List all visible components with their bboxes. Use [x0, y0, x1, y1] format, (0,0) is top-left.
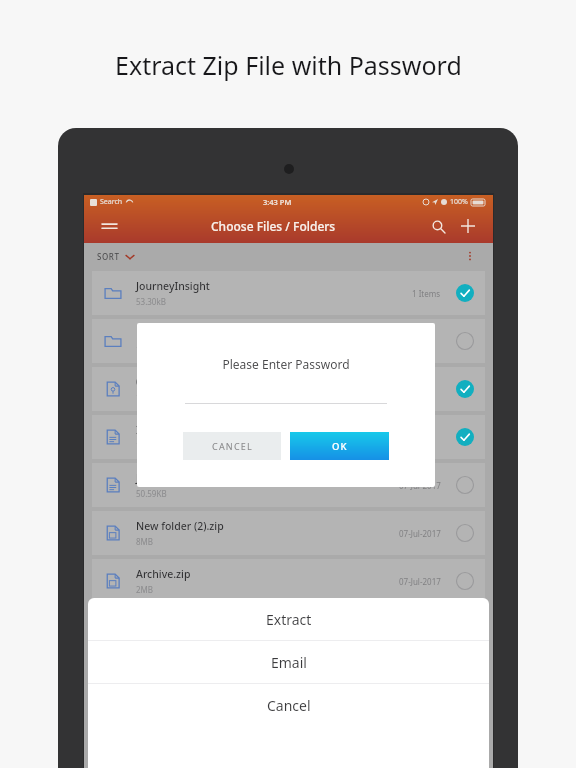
staticText: 13.5MB: [136, 440, 165, 451]
button[interactable]: Select Archive.zip: [455, 571, 475, 591]
staticText: 02 File: [136, 375, 168, 389]
button[interactable]: CANCEL: [183, 432, 281, 460]
button[interactable]: JourneyInsight: [92, 271, 485, 315]
staticText: Archive.zip: [136, 567, 191, 581]
button[interactable]: OK: [290, 432, 389, 460]
button[interactable]: Menu: [96, 213, 122, 239]
staticText: SORT: [97, 251, 120, 262]
staticText: Email: [271, 653, 307, 672]
button[interactable]: Search: [425, 213, 451, 239]
button[interactable]: IPAInfo: [92, 415, 485, 459]
staticText: Extract: [266, 610, 312, 629]
staticText: 07-Jul-2017: [399, 576, 441, 587]
button[interactable]: Select New folder (2).zip: [455, 523, 475, 543]
button[interactable]: 02 File: [92, 367, 485, 411]
staticText: IPAInfo: [136, 423, 173, 437]
staticText: Cancel: [267, 696, 311, 715]
staticText: New folder (2).zip: [136, 519, 224, 533]
staticText: 8MB: [136, 536, 154, 547]
button[interactable]: Add: [455, 213, 481, 239]
staticText: 11MB: [136, 344, 158, 355]
staticText: Please Enter Password: [222, 356, 350, 372]
button[interactable]: Select New folder: [455, 331, 475, 351]
staticText: OK: [332, 440, 348, 453]
button[interactable]: New folder (2).zip: [92, 511, 485, 555]
staticText: 50.59KB: [136, 488, 167, 499]
button[interactable]: Email: [88, 641, 489, 683]
staticText: Choose Files / Folders: [211, 218, 336, 234]
staticText: 2MB: [136, 584, 154, 595]
staticText: 3:43 PM: [263, 197, 292, 207]
button[interactable]: Archive.zip: [92, 559, 485, 603]
button[interactable]: Select JourneyInsight.rar: [455, 475, 475, 495]
button[interactable]: Extract: [88, 598, 489, 640]
staticText: 100%: [450, 197, 468, 207]
staticText: 07-Jul-2017: [399, 528, 441, 539]
button[interactable]: Cancel: [88, 684, 489, 726]
button[interactable]: SORT: [97, 251, 134, 262]
staticText: Search: [100, 197, 123, 207]
staticText: Extract Zip File with Password: [115, 48, 462, 82]
staticText: JourneyInsight: [136, 279, 210, 293]
staticText: 53.30kB: [136, 296, 166, 307]
staticText: CANCEL: [212, 440, 253, 452]
staticText: 1 Items: [412, 288, 441, 299]
staticText: 10MB: [136, 392, 158, 403]
staticText: 07-Jul-2017: [399, 480, 441, 491]
button[interactable]: Select JourneyInsight: [455, 283, 475, 303]
button[interactable]: New folder: [92, 319, 485, 363]
button[interactable]: Select IPAInfo: [455, 427, 475, 447]
staticText: New folder: [136, 327, 192, 341]
button[interactable]: Select 02 File: [455, 379, 475, 399]
button[interactable]: JourneyInsight.rar: [92, 463, 485, 507]
button[interactable]: More options: [460, 246, 480, 266]
staticText: JourneyInsight.rar: [136, 471, 228, 485]
